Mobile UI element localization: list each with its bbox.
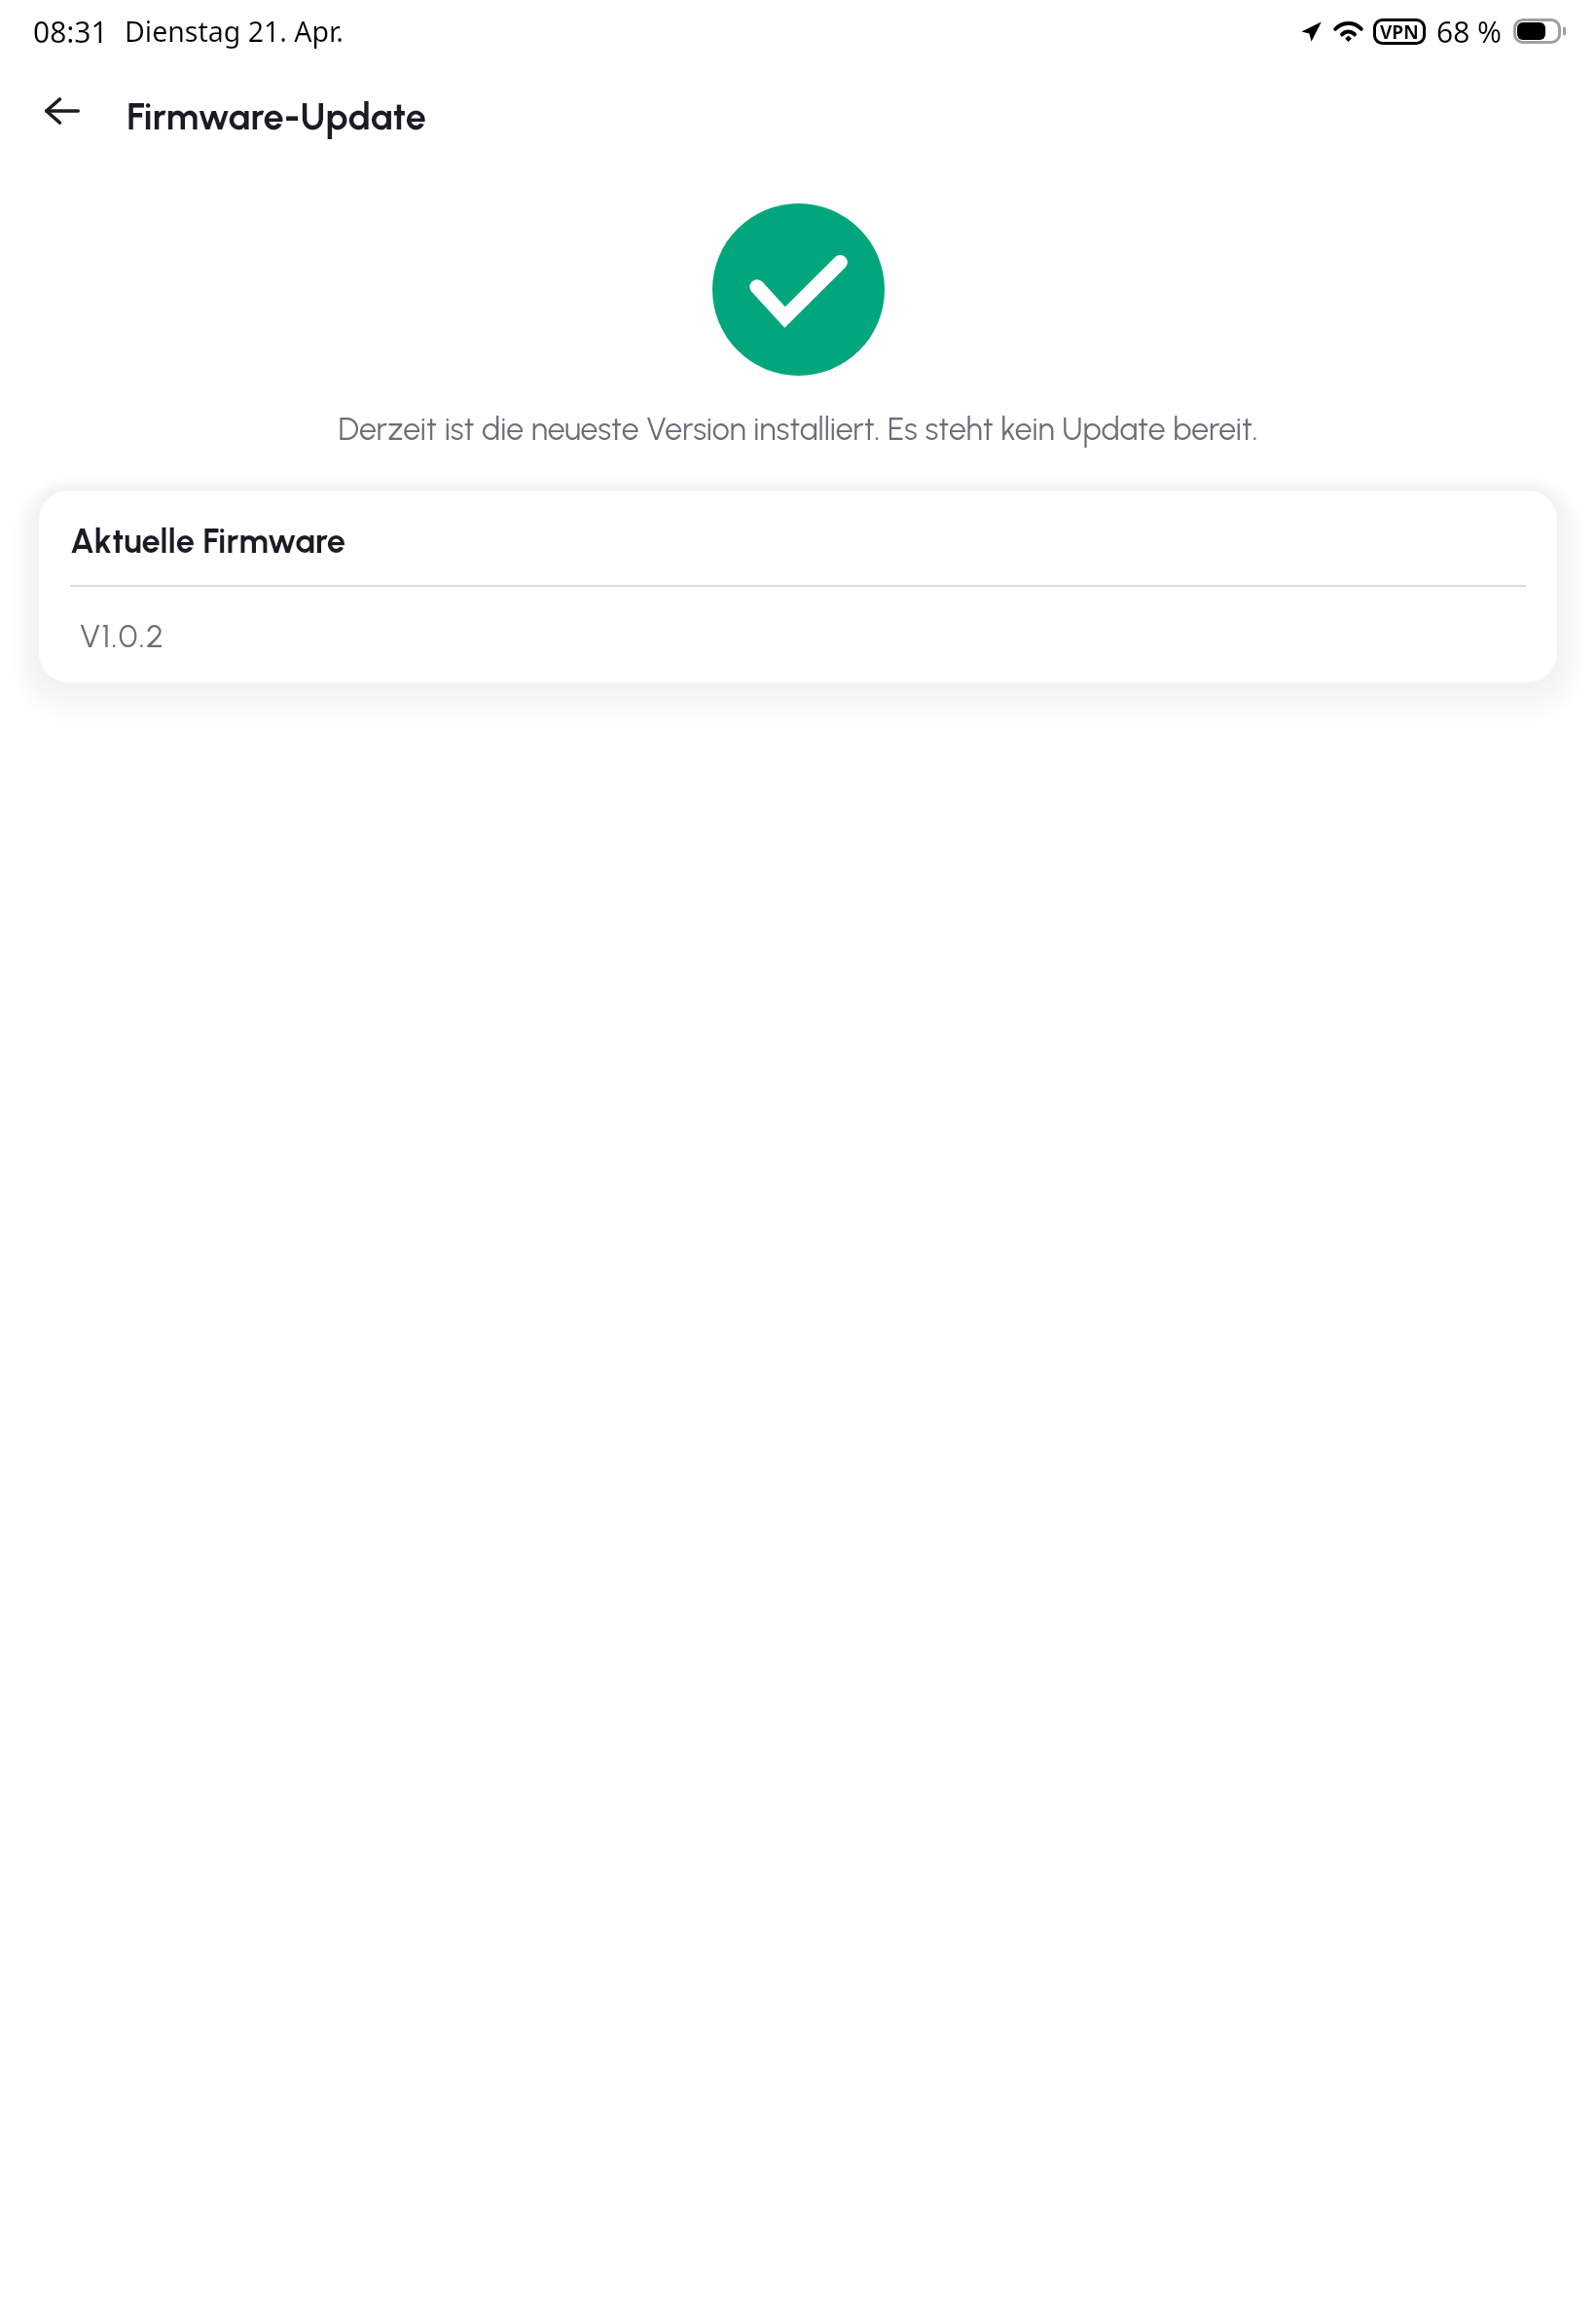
staticText: 08:31	[33, 12, 108, 52]
staticText: Dienstag 21. Apr.	[125, 13, 344, 51]
staticText: Firmware-Update	[127, 94, 426, 139]
staticText: VPN	[1380, 19, 1419, 45]
button[interactable]: Zurück	[35, 84, 90, 138]
button[interactable]: Aktuelle Firmware	[39, 491, 1557, 682]
staticText: 68 %	[1436, 12, 1503, 52]
staticText: V1.0.2	[80, 617, 165, 656]
staticText: Derzeit ist die neueste Version installi…	[29, 411, 1567, 448]
staticText: Aktuelle Firmware	[70, 521, 346, 561]
